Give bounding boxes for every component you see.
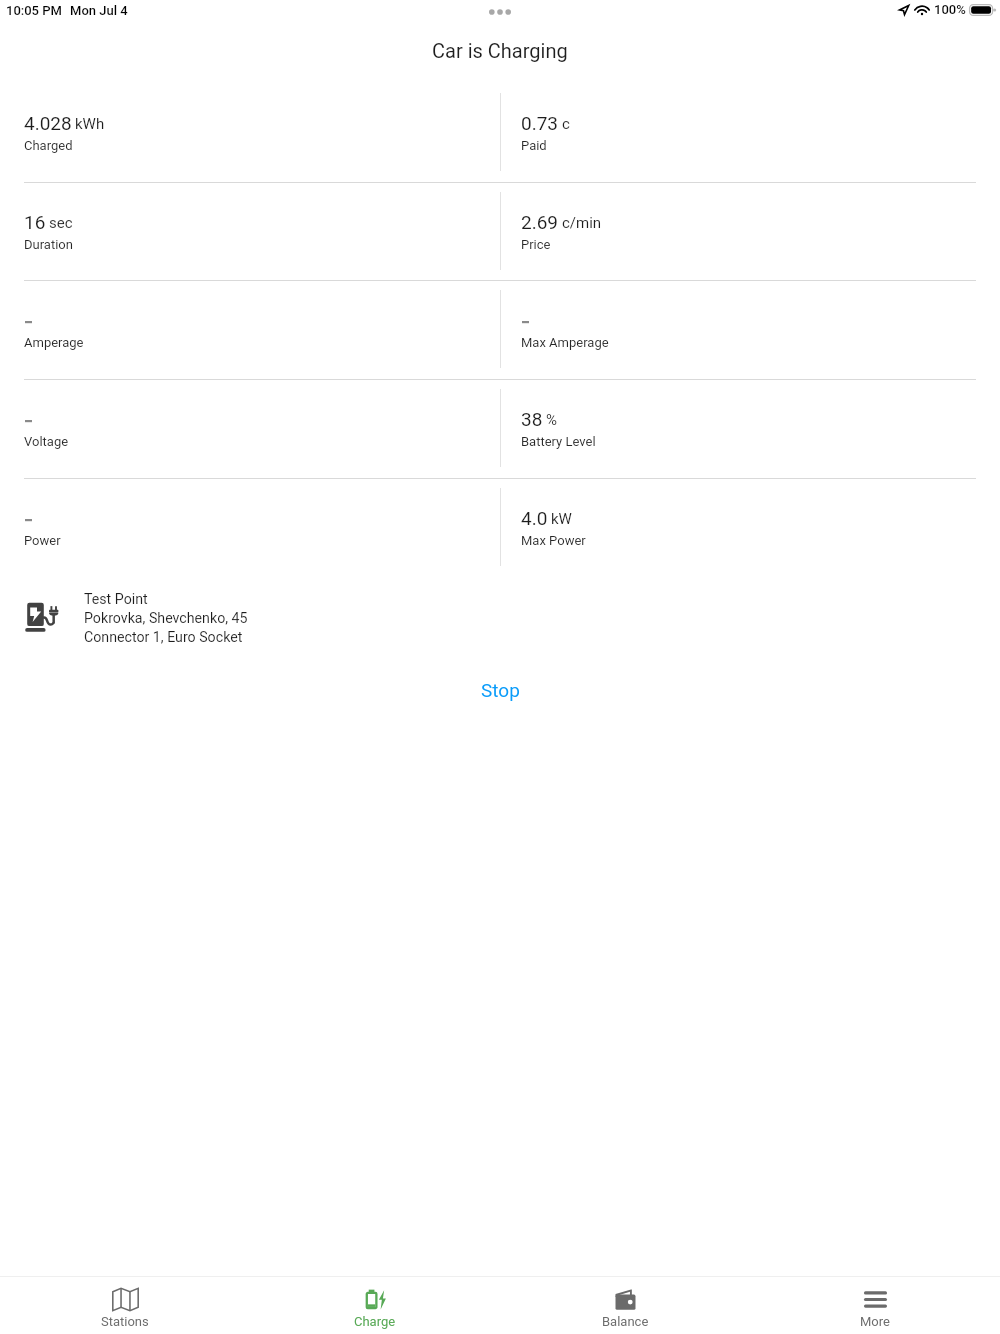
staticText: More bbox=[860, 1314, 890, 1329]
staticText: % bbox=[546, 411, 557, 429]
button[interactable]: Stop bbox=[461, 672, 540, 708]
button[interactable]: 38 bbox=[521, 407, 596, 449]
staticText: 0.73 bbox=[521, 112, 559, 134]
button[interactable]: More bbox=[750, 1277, 1000, 1334]
staticText: c bbox=[562, 115, 570, 133]
staticText: Stop bbox=[481, 679, 520, 701]
staticText: Connector 1, Euro Socket bbox=[84, 629, 243, 646]
button[interactable]: Voltage bbox=[24, 407, 69, 449]
staticText: Pokrovka, Shevchenko, 45 bbox=[84, 610, 248, 627]
staticText: Power bbox=[24, 533, 61, 548]
staticText: 16 bbox=[24, 211, 46, 233]
button[interactable]: 4.0 bbox=[521, 506, 586, 548]
staticText: Charge bbox=[354, 1314, 396, 1329]
staticText: Max Amperage bbox=[521, 335, 609, 350]
staticText: Duration bbox=[24, 237, 73, 252]
staticText: c/min bbox=[562, 214, 602, 232]
staticText: 4.0 bbox=[521, 507, 548, 529]
button[interactable]: Charge bbox=[250, 1277, 500, 1334]
staticText: Balance bbox=[602, 1314, 649, 1329]
staticText: Charged bbox=[24, 138, 73, 153]
staticText: sec bbox=[49, 214, 73, 232]
staticText: kW bbox=[551, 510, 572, 528]
staticText: Stations bbox=[101, 1314, 149, 1329]
button[interactable]: 2.69 bbox=[521, 210, 602, 252]
button[interactable]: 4.028 bbox=[24, 111, 105, 153]
staticText: Price bbox=[521, 237, 551, 252]
staticText: Test Point bbox=[84, 591, 148, 608]
button[interactable]: More options bbox=[478, 3, 522, 21]
staticText: Amperage bbox=[24, 335, 84, 350]
staticText: Max Power bbox=[521, 533, 586, 548]
staticText: Paid bbox=[521, 138, 547, 153]
staticText: Battery Level bbox=[521, 434, 596, 449]
staticText: 4.028 bbox=[24, 112, 72, 134]
button[interactable]: Power bbox=[24, 506, 61, 548]
staticText: Voltage bbox=[24, 434, 69, 449]
staticText: 10:05 PM bbox=[6, 3, 62, 18]
staticText: 2.69 bbox=[521, 211, 559, 233]
button[interactable]: Amperage bbox=[24, 308, 84, 350]
staticText: Mon Jul 4 bbox=[70, 3, 128, 18]
staticText: 100% bbox=[934, 2, 966, 17]
button[interactable]: Max Amperage bbox=[521, 308, 609, 350]
button[interactable]: 16 bbox=[24, 210, 73, 252]
button[interactable]: Balance bbox=[500, 1277, 750, 1334]
staticText: Car is Charging bbox=[432, 39, 568, 62]
button[interactable]: Stations bbox=[0, 1277, 250, 1334]
button[interactable]: Test Point bbox=[0, 586, 1000, 648]
staticText: 38 bbox=[521, 408, 543, 430]
button[interactable]: 0.73 bbox=[521, 111, 570, 153]
staticText: kWh bbox=[75, 115, 105, 133]
